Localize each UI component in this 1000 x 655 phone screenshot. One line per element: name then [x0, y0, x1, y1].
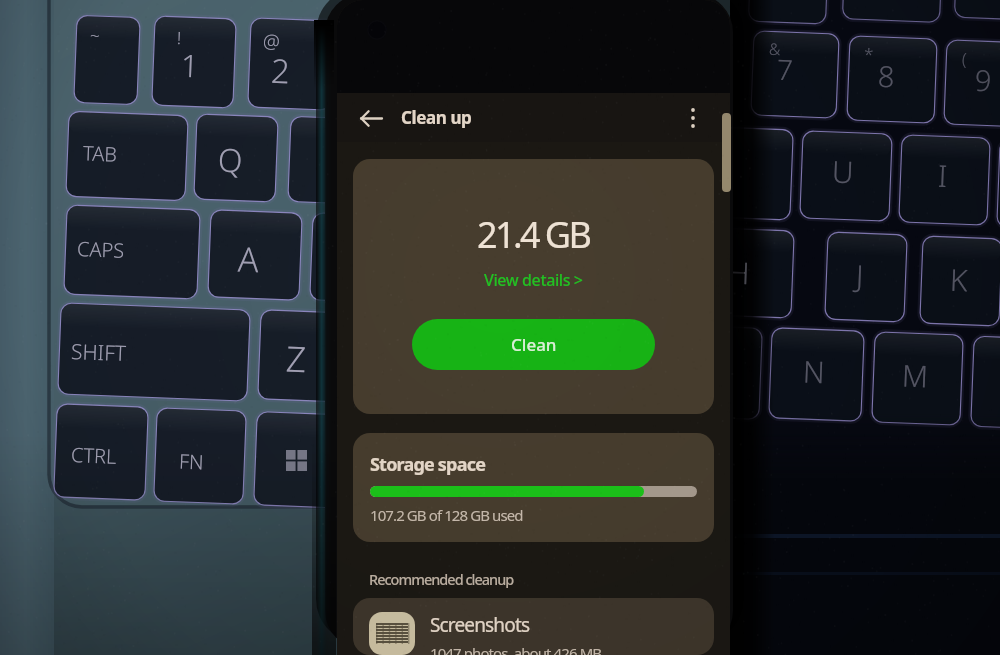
- staticText: Z: [285, 335, 308, 383]
- staticText: !: [177, 26, 182, 49]
- staticText: 107.2 GB of 128 GB used: [370, 505, 523, 525]
- staticText: I: [937, 155, 949, 196]
- staticText: J: [855, 255, 865, 296]
- staticText: Q: [217, 137, 244, 182]
- staticText: 7: [776, 50, 794, 88]
- staticText: CTRL: [70, 441, 117, 470]
- staticText: K: [949, 259, 969, 300]
- staticText: M: [901, 354, 930, 396]
- staticText: 1: [180, 44, 200, 86]
- staticText: CAPS: [76, 235, 125, 264]
- staticText: Clean up: [401, 106, 472, 129]
- staticText: Screenshots: [430, 612, 530, 638]
- staticText: A: [237, 236, 260, 282]
- button[interactable]: Back: [354, 101, 388, 135]
- staticText: U: [831, 151, 855, 192]
- staticText: 21.4 GB: [477, 210, 590, 259]
- staticText: *: [864, 43, 874, 66]
- staticText: FN: [178, 447, 204, 475]
- button[interactable]: Clean: [412, 319, 655, 370]
- staticText: 8: [877, 56, 896, 95]
- staticText: Clean: [511, 333, 557, 356]
- staticText: &: [769, 38, 781, 60]
- button[interactable]: More options: [676, 101, 710, 135]
- button[interactable]: Screenshots: [353, 598, 714, 655]
- staticText: (: [962, 47, 967, 70]
- staticText: N: [802, 351, 826, 392]
- button[interactable]: View details >: [478, 266, 589, 294]
- staticText: 1047 photos, about 426 MB: [430, 643, 602, 655]
- staticText: @: [262, 28, 280, 54]
- staticText: SHIFT: [70, 337, 127, 368]
- staticText: 9: [974, 60, 993, 99]
- staticText: View details >: [484, 269, 583, 291]
- staticText: ~: [90, 24, 100, 47]
- staticText: 2: [270, 48, 291, 93]
- staticText: TAB: [82, 139, 117, 168]
- staticText: H: [727, 252, 751, 293]
- staticText: Recommended cleanup: [369, 569, 514, 589]
- staticText: Storage space: [370, 452, 486, 477]
